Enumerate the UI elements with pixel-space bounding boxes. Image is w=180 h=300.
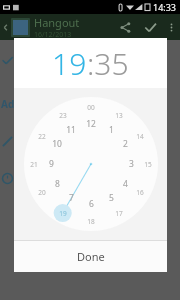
staticText: 3 <box>129 158 134 170</box>
button[interactable]: Done <box>14 241 167 272</box>
staticText: 19 <box>52 43 87 84</box>
staticText: 14:33 <box>153 1 177 13</box>
staticText: 16 <box>136 188 144 197</box>
staticText: 20 <box>38 188 46 197</box>
button[interactable]: Share <box>113 15 137 39</box>
staticText: 21 <box>30 160 38 169</box>
staticText: 8 <box>55 178 60 190</box>
staticText: 7 <box>69 192 74 204</box>
button[interactable]: 19 <box>14 38 167 88</box>
button[interactable]: More options <box>163 19 180 36</box>
staticText: Ad <box>1 97 15 111</box>
button[interactable]: Accept <box>137 14 163 40</box>
staticText: 10 <box>52 138 62 150</box>
staticText: 22 <box>38 132 46 141</box>
staticText: 1 <box>109 124 114 136</box>
staticText: :35 <box>87 43 129 84</box>
staticText: 4 <box>123 178 128 190</box>
staticText: 18 <box>87 217 95 226</box>
staticText: 23 <box>59 111 67 120</box>
staticText: 14 <box>136 132 144 141</box>
staticText: Hangout <box>34 15 80 30</box>
staticText: 9 <box>49 158 54 170</box>
staticText: 13 <box>115 111 123 120</box>
staticText: Done <box>77 249 105 264</box>
staticText: 19 <box>59 209 67 218</box>
staticText: 12 <box>86 118 96 130</box>
staticText: 6 <box>89 198 94 210</box>
staticText: 2 <box>123 138 128 150</box>
button[interactable]: Navigate up <box>0 22 11 33</box>
staticText: 00 <box>87 103 95 112</box>
staticText: 17 <box>115 209 123 218</box>
staticText: 16/12/2013 <box>34 30 72 40</box>
staticText: 15 <box>144 160 152 169</box>
staticText: 11 <box>66 124 76 136</box>
staticText: 5 <box>109 192 114 204</box>
